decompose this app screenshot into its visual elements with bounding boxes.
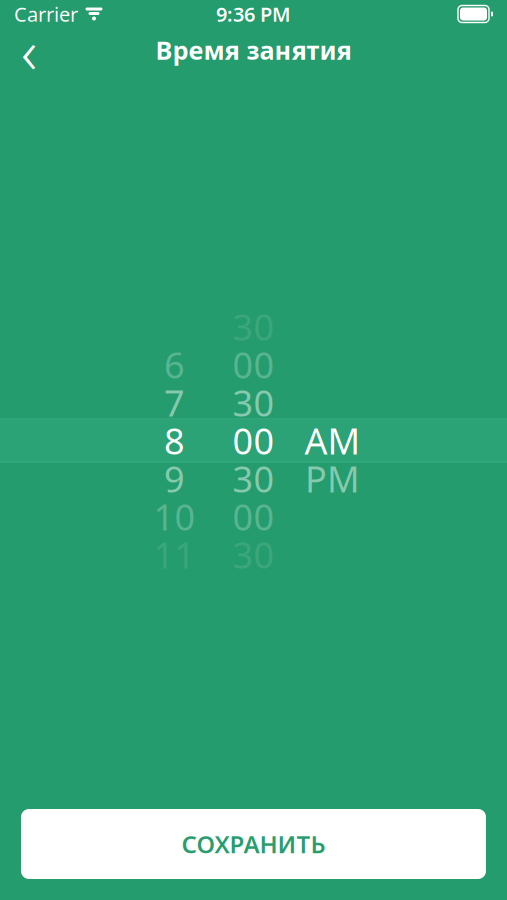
staticText: 11 — [153, 531, 195, 578]
staticText: 00 — [232, 341, 274, 388]
staticText: 30 — [232, 303, 274, 350]
staticText: 7 — [164, 379, 185, 426]
staticText: 00 — [232, 417, 274, 464]
staticText: Время занятия — [155, 33, 351, 67]
staticText: ‹ — [21, 9, 37, 91]
button[interactable]: СОХРАНИТЬ — [21, 809, 486, 879]
staticText: 30 — [232, 455, 274, 502]
staticText: 30 — [232, 379, 274, 426]
staticText: СОХРАНИТЬ — [181, 828, 325, 860]
button[interactable]: Back — [4, 28, 54, 72]
staticText: AM — [304, 417, 360, 464]
staticText: 9 — [164, 455, 185, 502]
staticText: 8 — [164, 417, 185, 464]
staticText: 00 — [232, 493, 274, 540]
staticText: Carrier — [14, 1, 78, 27]
staticText: 9:36 PM — [216, 1, 291, 27]
staticText: 30 — [232, 531, 274, 578]
staticText: 6 — [164, 341, 185, 388]
staticText: 10 — [153, 493, 195, 540]
staticText: PM — [305, 455, 360, 502]
